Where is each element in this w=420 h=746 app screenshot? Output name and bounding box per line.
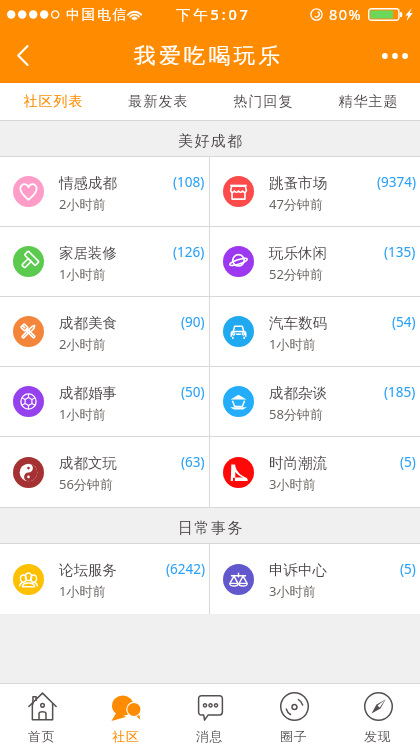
staticText: 社区列表 — [23, 93, 83, 111]
staticText: 1小时前 — [269, 335, 316, 353]
staticText: 56分钟前 — [59, 475, 113, 493]
staticText: 时尚潮流 — [269, 454, 327, 472]
staticText: (50) — [181, 383, 205, 401]
staticText: 成都杂谈 — [269, 384, 327, 402]
staticText: 最新发表 — [128, 93, 188, 111]
staticText: 成都文玩 — [59, 454, 117, 472]
staticText: 热门回复 — [233, 93, 293, 111]
staticText: 首页 — [28, 728, 56, 744]
button[interactable]: 圈子 — [252, 684, 336, 746]
button[interactable]: 跳蚤市场 — [210, 157, 420, 226]
staticText: 58分钟前 — [269, 405, 323, 423]
button[interactable]: 成都杂谈 — [210, 367, 420, 436]
staticText: 3小时前 — [269, 475, 316, 493]
staticText: (185) — [384, 383, 416, 401]
button[interactable]: 社区列表 — [0, 83, 105, 120]
button[interactable]: 首页 — [0, 684, 84, 746]
staticText: 80% — [329, 4, 363, 24]
staticText: 社区 — [112, 728, 140, 744]
staticText: 情感成都 — [59, 174, 117, 192]
staticText: 2小时前 — [59, 195, 106, 213]
button[interactable]: 成都婚事 — [0, 367, 209, 436]
staticText: 日常事务 — [178, 519, 244, 538]
staticText: 成都婚事 — [59, 384, 117, 402]
button[interactable]: Back — [0, 28, 46, 83]
button[interactable]: 时尚潮流 — [210, 437, 420, 507]
staticText: 家居装修 — [59, 244, 117, 262]
button[interactable]: 最新发表 — [105, 83, 210, 120]
button[interactable]: 成都文玩 — [0, 437, 209, 507]
staticText: 下午5:07 — [176, 4, 251, 24]
staticText: 1小时前 — [59, 265, 106, 283]
staticText: 消息 — [196, 728, 224, 744]
staticText: (6242) — [166, 560, 205, 578]
button[interactable]: 精华主题 — [315, 83, 420, 120]
button[interactable]: 发现 — [336, 684, 420, 746]
button[interactable]: 论坛服务 — [0, 544, 209, 614]
staticText: 汽车数码 — [269, 314, 327, 332]
staticText: (63) — [181, 453, 205, 471]
button[interactable]: 玩乐休闲 — [210, 227, 420, 296]
staticText: 中国电信 — [66, 6, 129, 23]
button[interactable]: 情感成都 — [0, 157, 209, 226]
button[interactable]: 汽车数码 — [210, 297, 420, 366]
staticText: 美好成都 — [178, 132, 244, 151]
staticText: 我爱吃喝玩乐 — [134, 42, 284, 69]
staticText: (54) — [392, 313, 416, 331]
staticText: 2小时前 — [59, 335, 106, 353]
button[interactable]: 热门回复 — [210, 83, 315, 120]
button[interactable]: 成都美食 — [0, 297, 209, 366]
staticText: 成都美食 — [59, 314, 117, 332]
staticText: 1小时前 — [59, 582, 106, 600]
staticText: 3小时前 — [269, 582, 316, 600]
staticText: 1小时前 — [59, 405, 106, 423]
staticText: (5) — [400, 453, 416, 471]
staticText: 圈子 — [280, 728, 308, 744]
staticText: (9374) — [377, 173, 416, 191]
staticText: 精华主题 — [338, 93, 398, 111]
staticText: (135) — [384, 243, 416, 261]
staticText: 52分钟前 — [269, 265, 323, 283]
staticText: (5) — [400, 560, 416, 578]
staticText: 47分钟前 — [269, 195, 323, 213]
staticText: (90) — [181, 313, 205, 331]
staticText: 跳蚤市场 — [269, 174, 327, 192]
button[interactable]: 社区 — [84, 684, 168, 746]
staticText: 申诉中心 — [269, 561, 327, 579]
button[interactable]: 家居装修 — [0, 227, 209, 296]
staticText: 论坛服务 — [59, 561, 117, 579]
button[interactable]: 消息 — [168, 684, 252, 746]
staticText: 发现 — [364, 728, 392, 744]
staticText: (126) — [173, 243, 205, 261]
button[interactable]: More options — [370, 28, 420, 83]
staticText: (108) — [173, 173, 205, 191]
staticText: 玩乐休闲 — [269, 244, 327, 262]
button[interactable]: 申诉中心 — [210, 544, 420, 614]
